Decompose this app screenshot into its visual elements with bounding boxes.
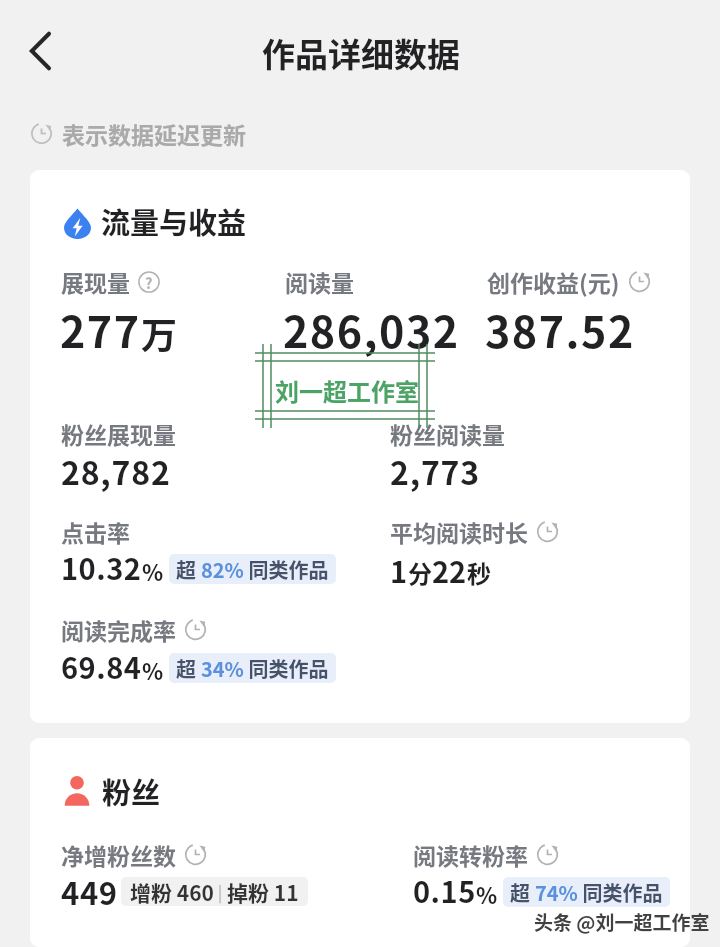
staticText: 同类作品 [578, 878, 663, 907]
button[interactable]: 平均阅读时长 [390, 515, 559, 548]
button[interactable]: Back [11, 22, 69, 80]
staticText: 刘一超工作室 [275, 373, 419, 408]
staticText: 创作收益(元) [487, 265, 620, 298]
staticText: 阅读转粉率 [413, 838, 528, 871]
staticText: 69.84 [61, 645, 142, 687]
staticText: 平均阅读时长 [390, 515, 528, 548]
staticText: 286,032 [283, 298, 460, 360]
staticText: 作品详细数据 [262, 29, 460, 77]
staticText: 超 [176, 654, 201, 683]
staticText: 0.15 [413, 869, 476, 911]
button[interactable]: 增粉 460 [121, 877, 308, 906]
button[interactable]: 净增粉丝数 [61, 838, 207, 871]
staticText: 28,782 [61, 448, 171, 494]
staticText: 277 [60, 298, 141, 360]
staticText: 同类作品 [244, 654, 329, 683]
staticText: 22 [432, 549, 467, 591]
staticText: ? [145, 272, 153, 293]
staticText: 秒 [467, 555, 491, 590]
staticText: 点击率 [61, 515, 130, 548]
button[interactable]: 创作收益(元) [487, 265, 651, 298]
staticText: 粉丝展现量 [61, 417, 176, 450]
staticText: 449 [61, 869, 118, 914]
staticText: 10.32 [61, 546, 142, 588]
staticText: 34% [201, 654, 244, 683]
staticText: 分 [408, 555, 432, 590]
staticText: 表示数据延迟更新 [62, 117, 246, 150]
button[interactable]: 展现量 [61, 265, 160, 298]
staticText: 净增粉丝数 [61, 838, 176, 871]
button[interactable]: 阅读量 [285, 265, 354, 298]
staticText: 阅读完成率 [61, 613, 176, 646]
staticText: 头条 @刘一超工作室 [534, 908, 710, 936]
staticText: 387.52 [485, 298, 635, 360]
button[interactable]: 超 [503, 877, 670, 907]
staticText: % [142, 654, 164, 686]
staticText: 1 [390, 549, 408, 591]
button[interactable]: 阅读完成率 [61, 613, 207, 646]
staticText: 82% [201, 555, 244, 584]
staticText: % [142, 555, 164, 587]
staticText: 阅读量 [285, 265, 354, 298]
staticText: 流量与收益 [101, 200, 247, 242]
staticText: 展现量 [61, 265, 130, 298]
staticText: 粉丝 [102, 770, 161, 812]
staticText: % [476, 878, 498, 910]
staticText: 超 [510, 878, 535, 907]
staticText: 掉粉 11 [227, 877, 299, 906]
button[interactable]: 阅读转粉率 [413, 838, 559, 871]
staticText: 74% [535, 878, 578, 907]
staticText: 粉丝阅读量 [390, 417, 505, 450]
staticText: 万 [141, 307, 178, 359]
staticText: 超 [176, 555, 201, 584]
staticText: 增粉 460 [130, 877, 214, 906]
staticText: 2,773 [390, 448, 480, 494]
staticText: | [214, 880, 227, 903]
staticText: 同类作品 [244, 555, 329, 584]
button[interactable]: 超 [169, 554, 336, 584]
button[interactable]: 超 [169, 653, 336, 683]
